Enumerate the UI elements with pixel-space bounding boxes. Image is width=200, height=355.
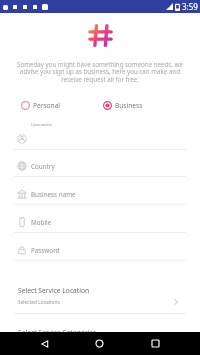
staticText: Business: [115, 101, 143, 110]
staticText: Personal: [33, 101, 61, 110]
button[interactable]: Home: [89, 332, 110, 355]
button[interactable]: Personal: [17, 97, 65, 114]
button[interactable]: Mobile: [0, 209, 200, 233]
button[interactable]: Select Service Categories: [0, 326, 200, 355]
button[interactable]: Select Service Location: [0, 284, 200, 314]
button[interactable]: Password: [0, 237, 200, 261]
button[interactable]: Recents: [145, 332, 166, 355]
staticText: Someday you might have something someone…: [13, 60, 187, 84]
button[interactable]: Back: [34, 332, 55, 355]
button[interactable]: Business name: [0, 181, 200, 205]
button[interactable]: Country: [0, 153, 200, 177]
staticText: Username: [31, 121, 52, 127]
staticText: Select Service Categories: [18, 328, 97, 337]
button[interactable]: Username: [0, 118, 200, 150]
staticText: Country: [31, 162, 55, 171]
staticText: Selected Locations: [18, 299, 60, 306]
staticText: Select Service Location: [18, 286, 90, 295]
staticText: 3:59: [182, 1, 198, 12]
button[interactable]: Business: [99, 97, 147, 114]
staticText: Password: [31, 246, 60, 255]
staticText: Mobile: [31, 218, 52, 227]
staticText: Business name: [31, 190, 76, 199]
